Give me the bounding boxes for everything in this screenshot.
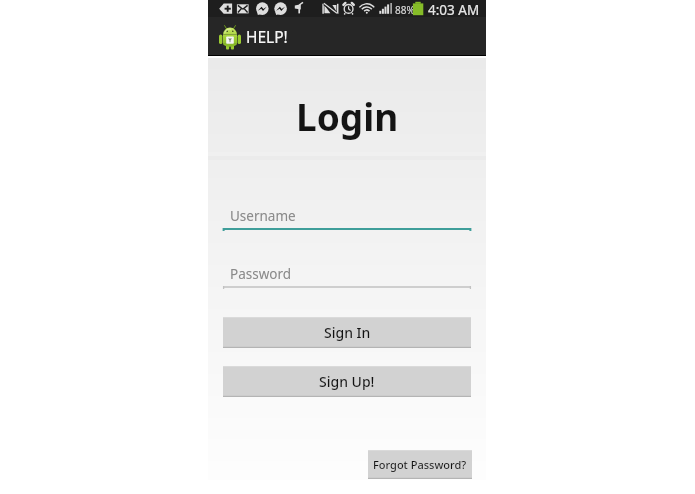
staticText: 88% (395, 3, 415, 17)
button[interactable]: Username (223, 207, 471, 232)
staticText: Sign In (324, 323, 371, 342)
staticText: Password (230, 265, 292, 283)
button[interactable]: Password (223, 265, 471, 290)
staticText: 4:03 AM (428, 1, 480, 18)
button[interactable]: HELP! app home (208, 17, 486, 56)
button[interactable]: Sign Up! (223, 366, 471, 397)
button[interactable]: Forgot Password? (368, 450, 472, 479)
staticText: Forgot Password? (373, 457, 467, 472)
other: Android app icon (216, 23, 244, 51)
staticText: HELP! (246, 26, 288, 47)
staticText: Login (296, 91, 399, 141)
staticText: Sign Up! (319, 372, 375, 391)
staticText: Username (230, 207, 296, 225)
button[interactable]: Sign In (223, 317, 471, 348)
